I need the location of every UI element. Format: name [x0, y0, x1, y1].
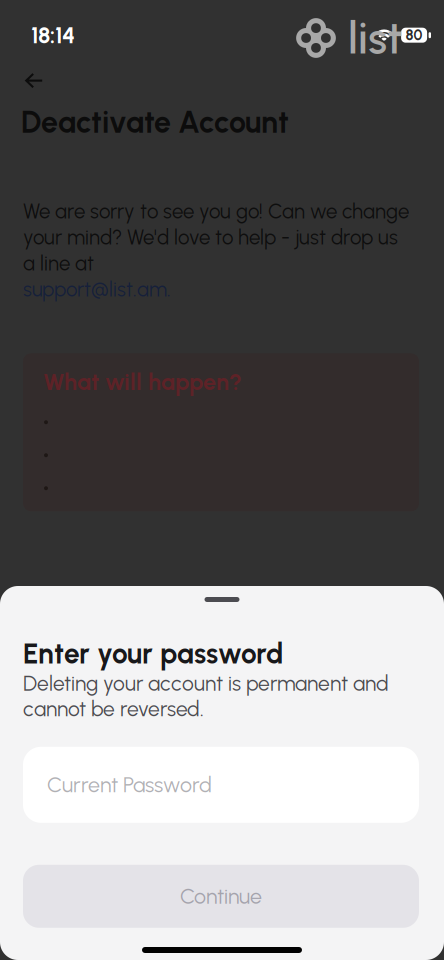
staticText: support@list.am. [23, 277, 171, 302]
staticText: 18:14 [31, 22, 75, 49]
staticText: What will happen? [43, 368, 242, 396]
staticText: Deactivate Account [21, 104, 289, 140]
staticText: your mind? We'd love to help - just drop… [23, 225, 398, 250]
staticText: We are sorry to see you go! Can we chang… [23, 199, 409, 224]
staticText: Deleting your account is permanent and [23, 671, 389, 696]
button[interactable]: Current Password [23, 747, 419, 823]
staticText: list [348, 12, 403, 64]
staticText: Current Password [47, 772, 212, 798]
staticText: Enter your password [23, 637, 283, 671]
button[interactable]: Continue [23, 865, 419, 928]
staticText: 80 [406, 26, 423, 44]
staticText: cannot be reversed. [23, 696, 204, 721]
staticText: Continue [180, 883, 262, 909]
staticText: a line at [23, 251, 94, 276]
